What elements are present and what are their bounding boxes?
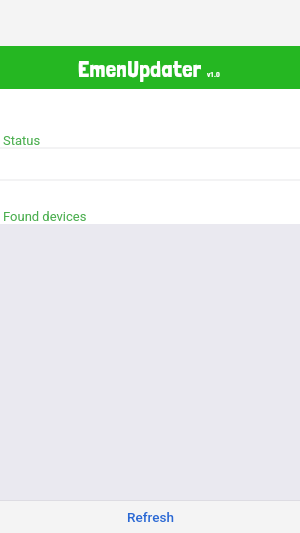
- staticText: Found devices: [3, 209, 87, 224]
- staticText: EmenUpdater: [78, 55, 202, 82]
- staticText: Refresh: [127, 509, 174, 525]
- staticText: Status: [3, 133, 41, 148]
- button[interactable]: Refresh: [0, 501, 300, 533]
- staticText: v1.0: [207, 71, 220, 79]
